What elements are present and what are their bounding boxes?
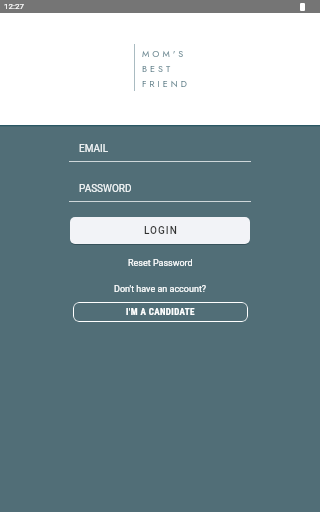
staticText: LOGIN [144,225,178,237]
other: Battery [300,3,305,11]
staticText: I'M A CANDIDATE [126,307,195,318]
staticText: BEST [142,62,174,75]
staticText: FRIEND [142,77,190,90]
staticText: EMAIL [79,143,109,155]
button[interactable]: I'M A CANDIDATE [73,302,248,322]
staticText: PASSWORD [79,183,132,195]
button[interactable]: EMAIL [69,143,251,162]
staticText: Don't have an account? [114,284,207,295]
staticText: 12:27 [4,2,24,11]
button[interactable]: PASSWORD [69,183,251,202]
staticText: MOM'S [142,47,187,60]
button[interactable]: Reset Password [69,258,251,269]
button[interactable]: LOGIN [70,217,250,244]
staticText: Reset Password [128,258,193,269]
